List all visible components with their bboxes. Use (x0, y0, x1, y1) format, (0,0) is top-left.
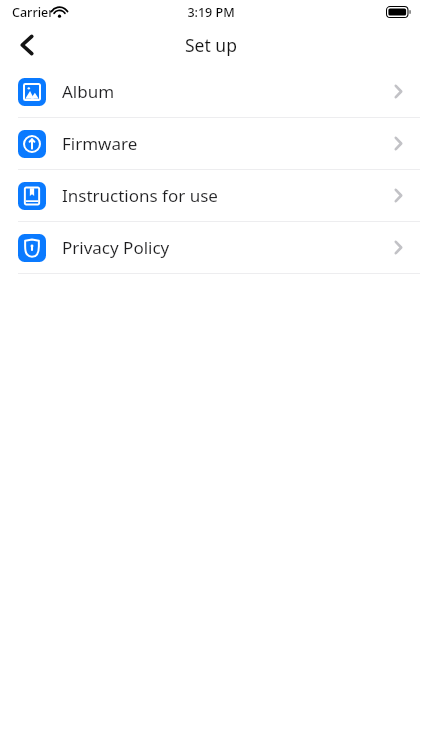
staticText: Album (62, 80, 115, 103)
button[interactable]: Firmware (0, 118, 422, 169)
staticText: Firmware (62, 132, 138, 155)
staticText: Instructions for use (62, 184, 218, 207)
button[interactable]: Back (6, 24, 48, 66)
button[interactable]: Album (0, 66, 422, 117)
staticText: Carrier (12, 4, 54, 21)
staticText: Privacy Policy (62, 236, 170, 259)
button[interactable]: Instructions for use (0, 170, 422, 221)
button[interactable]: Privacy Policy (0, 222, 422, 273)
staticText: 3:19 PM (187, 4, 235, 21)
staticText: Set up (185, 33, 237, 57)
